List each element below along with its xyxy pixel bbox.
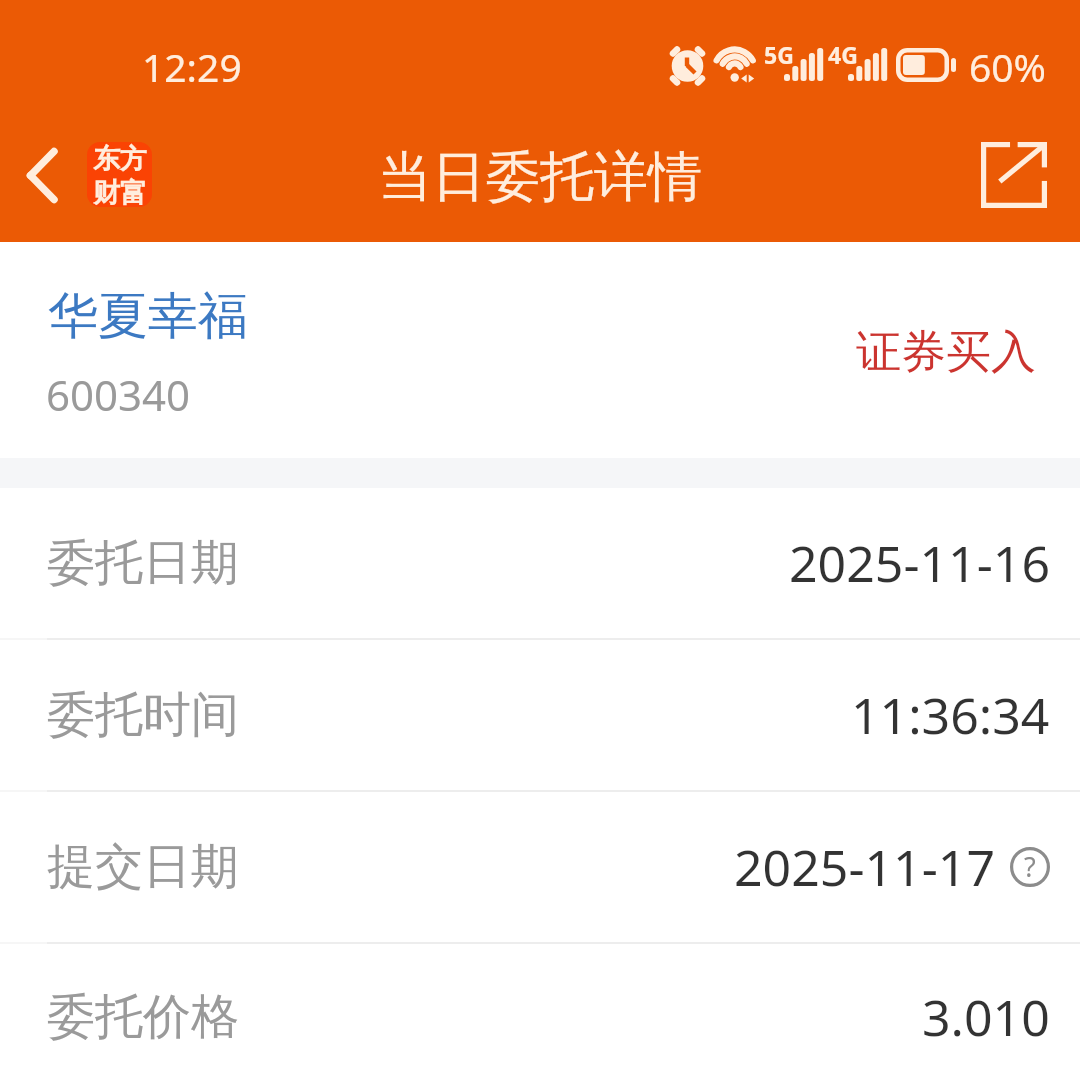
button[interactable]: East Money xyxy=(87,142,152,207)
staticText: 委托价格 xyxy=(47,987,239,1047)
staticText: 委托时间 xyxy=(47,685,239,745)
staticText: 11:36:34 xyxy=(851,681,1050,749)
button[interactable]: 委托价格 xyxy=(0,944,1080,1089)
staticText: 2025-11-17 xyxy=(734,833,995,901)
staticText: 华夏幸福 xyxy=(48,285,248,348)
staticText: 财富 xyxy=(93,176,147,207)
staticText: 60% xyxy=(969,40,1047,93)
button[interactable]: Share xyxy=(981,142,1047,208)
staticText: 证券买入 xyxy=(856,324,1036,381)
button[interactable]: Back xyxy=(14,142,76,210)
staticText: 5G xyxy=(764,39,794,70)
staticText: 3.010 xyxy=(922,983,1050,1051)
button[interactable]: 提交日期 xyxy=(0,792,1080,942)
staticText: 2025-11-16 xyxy=(789,529,1050,597)
staticText: 12:29 xyxy=(142,40,242,93)
button[interactable]: 委托时间 xyxy=(0,640,1080,790)
staticText: 提交日期 xyxy=(47,837,239,897)
button[interactable]: 委托日期 xyxy=(0,488,1080,638)
staticText: 委托日期 xyxy=(47,533,239,593)
staticText: 当日委托详情 xyxy=(378,143,702,211)
staticText: 4G xyxy=(828,39,858,70)
staticText: 600340 xyxy=(46,366,191,423)
staticText: 东方 xyxy=(93,142,147,176)
staticText: ? xyxy=(1024,848,1036,885)
